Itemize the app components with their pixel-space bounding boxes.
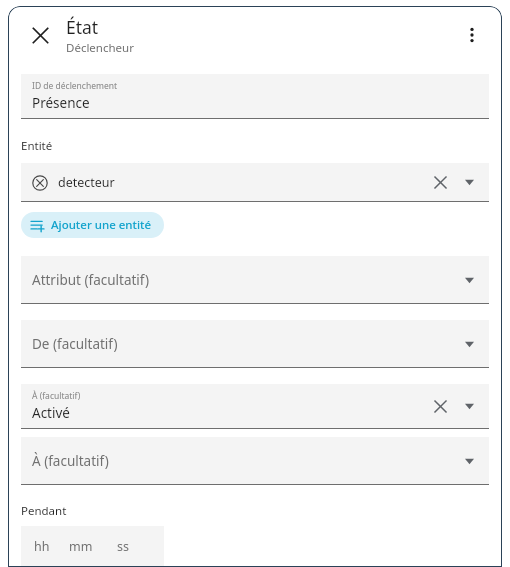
button[interactable]: hh (21, 526, 164, 567)
staticText: Activé (32, 404, 70, 422)
button[interactable]: À (facultatif) (21, 437, 489, 485)
staticText: De (facultatif) (32, 335, 118, 353)
button[interactable]: ID de déclenchement (21, 74, 489, 119)
button[interactable]: detecteur (21, 163, 489, 202)
staticText: À (facultatif) (32, 390, 81, 402)
button[interactable]: De (facultatif) (21, 320, 489, 368)
staticText: Attribut (facultatif) (32, 271, 150, 289)
button[interactable]: Fermer (20, 15, 60, 55)
staticText: Présence (32, 94, 90, 112)
staticText: Pendant (21, 503, 67, 519)
button[interactable]: Ouvrir la liste (457, 332, 481, 356)
button[interactable]: Effacer (427, 169, 453, 195)
button[interactable]: Ajouter une entité (21, 212, 164, 238)
button[interactable]: À (facultatif) (21, 384, 489, 429)
staticText: Déclencheur (66, 40, 134, 56)
button[interactable]: Attribut (facultatif) (21, 256, 489, 304)
button[interactable]: Ouvrir la liste (457, 394, 481, 418)
staticText: mm (69, 538, 117, 555)
button[interactable]: Ouvrir la liste (457, 449, 481, 473)
staticText: hh (34, 538, 69, 555)
button[interactable]: Ouvrir la liste (457, 170, 481, 194)
staticText: À (facultatif) (32, 452, 109, 470)
button[interactable]: Effacer (427, 393, 453, 419)
staticText: Ajouter une entité (51, 217, 152, 233)
staticText: État (66, 15, 99, 39)
staticText: ID de déclenchement (32, 80, 118, 92)
button[interactable]: Ouvrir la liste (457, 268, 481, 292)
staticText: ss (117, 538, 157, 555)
staticText: detecteur (58, 174, 115, 191)
button[interactable]: Plus d'options (452, 15, 492, 55)
staticText: Entité (21, 138, 53, 154)
